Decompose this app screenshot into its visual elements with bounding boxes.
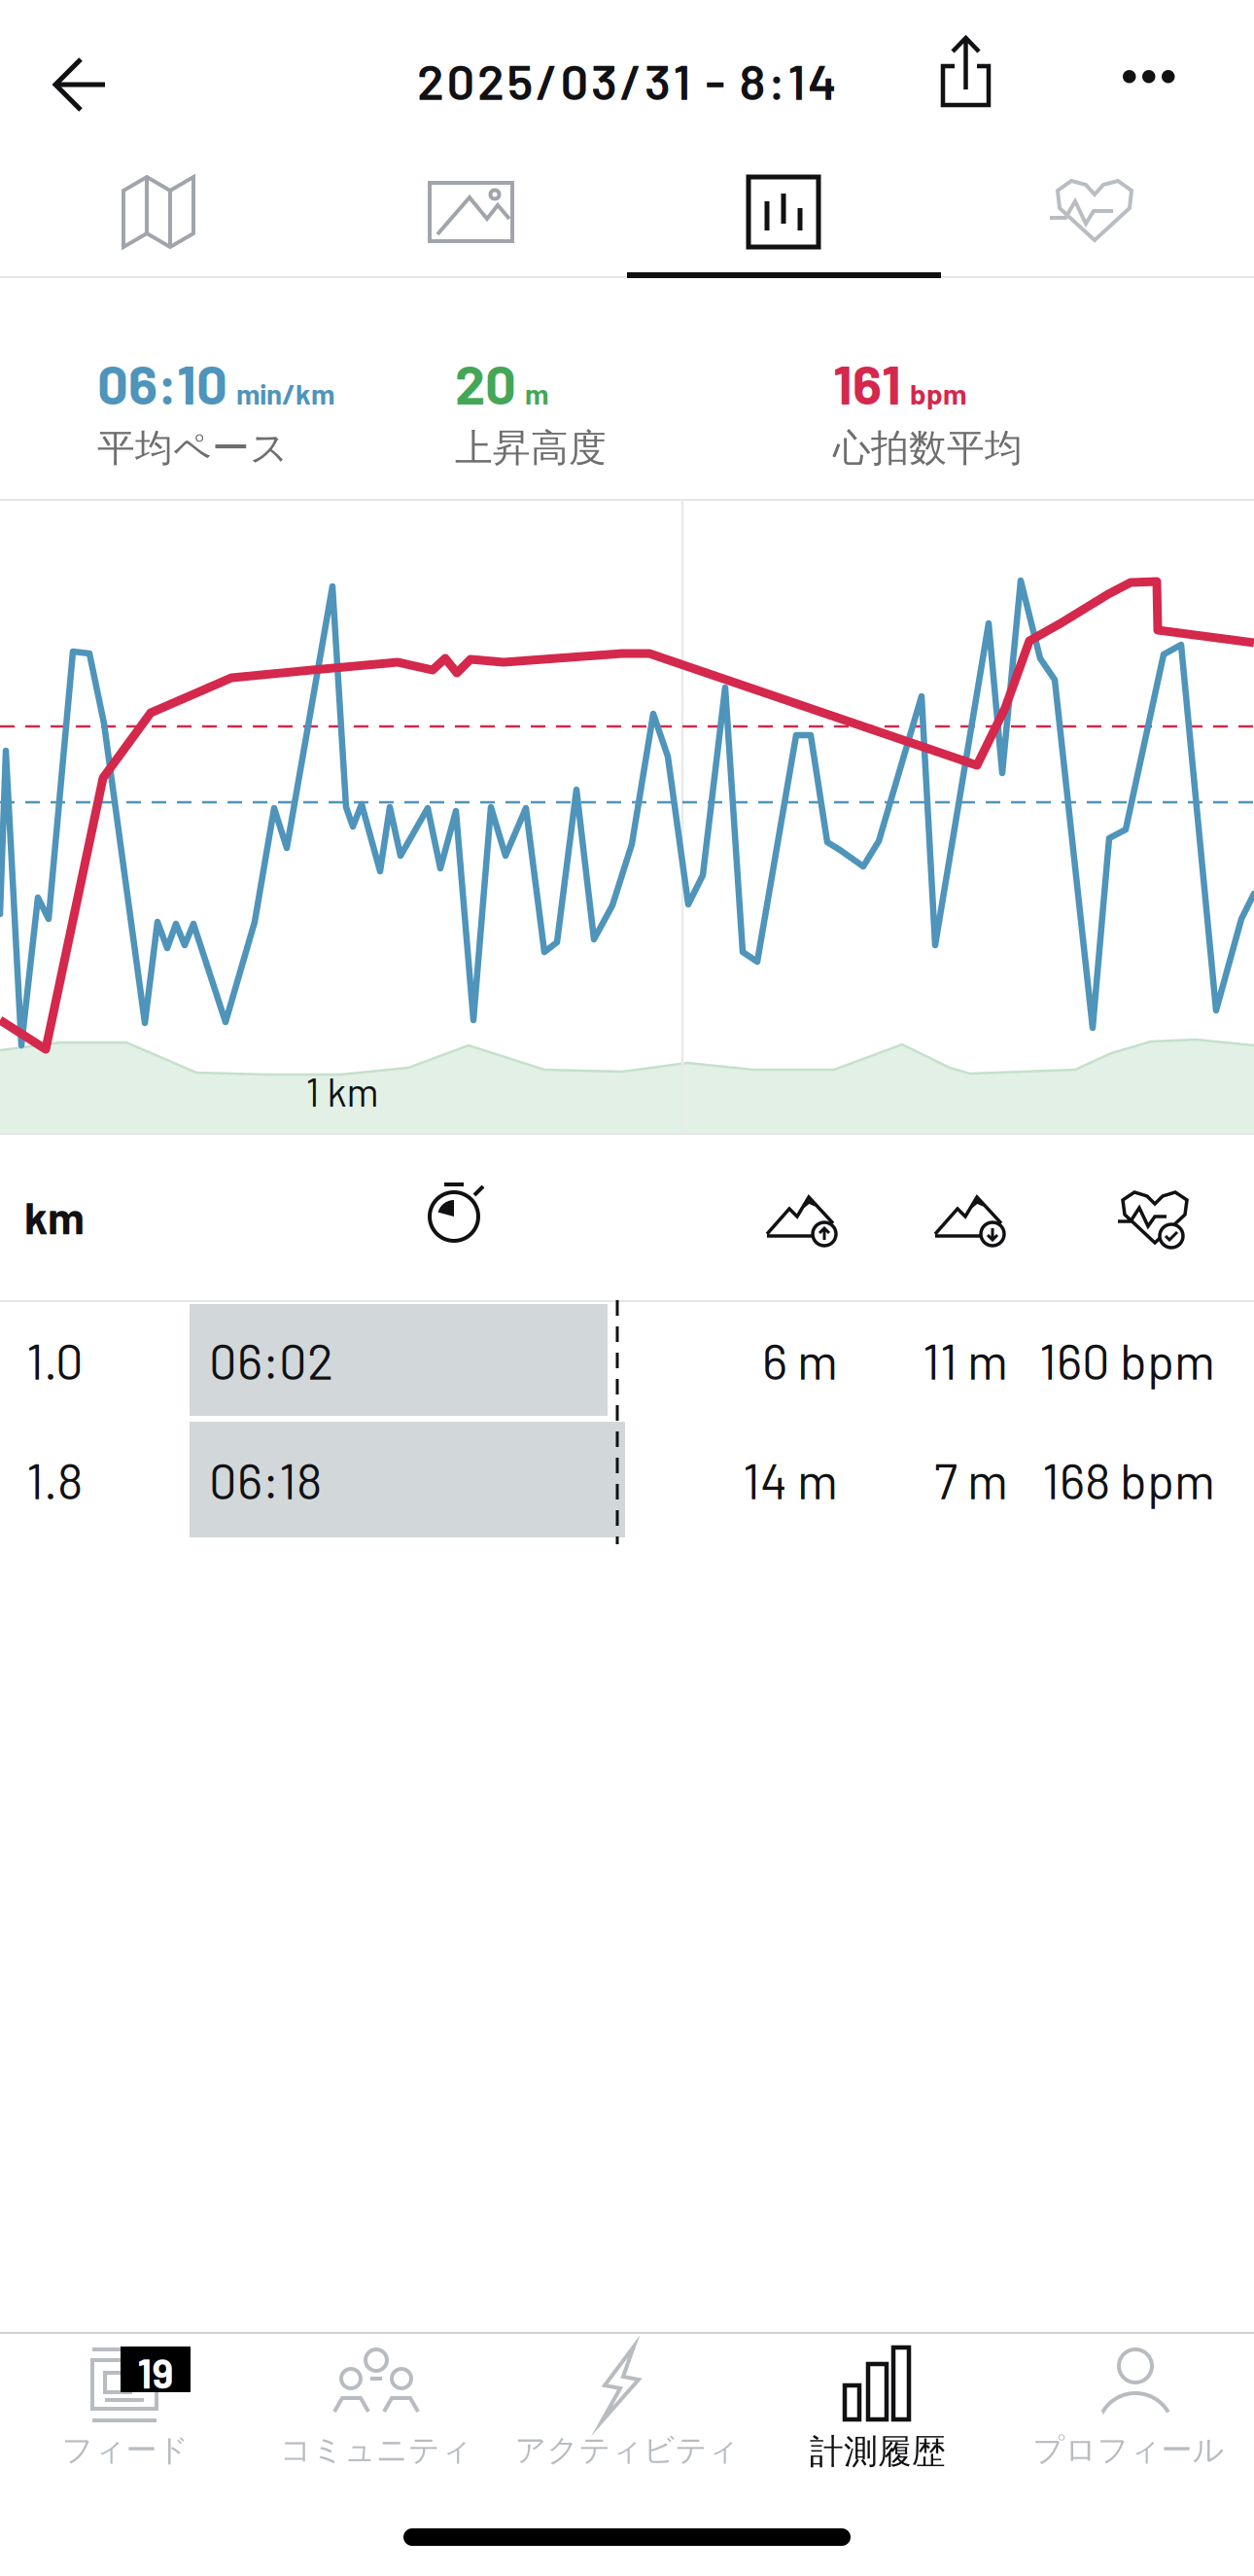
staticText: 7 m: [934, 1450, 1008, 1509]
staticText: 11 m: [923, 1330, 1008, 1389]
staticText: アクティビティ: [515, 2431, 739, 2469]
button[interactable]: [627, 156, 940, 272]
button[interactable]: [0, 0, 1254, 156]
button[interactable]: [940, 156, 1253, 272]
staticText: 1.8: [26, 1450, 83, 1509]
button[interactable]: [922, 19, 1009, 136]
staticText: 19: [138, 2348, 174, 2397]
staticText: 6 m: [762, 1330, 838, 1389]
staticText: 20: [455, 350, 516, 415]
button[interactable]: 19: [0, 0, 1254, 2576]
staticText: プロフィール: [1033, 2431, 1224, 2469]
button[interactable]: プロフィール: [0, 0, 1254, 2576]
button[interactable]: [0, 156, 313, 272]
button[interactable]: 計測履歴: [0, 0, 1254, 2576]
staticText: 心拍数平均: [833, 425, 1023, 471]
staticText: 168 bpm: [1042, 1450, 1215, 1509]
staticText: 上昇高度: [455, 425, 607, 471]
staticText: 計測履歴: [810, 2431, 946, 2473]
staticText: 06:18: [209, 1450, 322, 1509]
button[interactable]: コミュニティ: [0, 0, 1254, 2576]
staticText: 06:02: [209, 1330, 333, 1389]
staticText: フィード: [62, 2431, 189, 2469]
button[interactable]: アクティビティ: [0, 0, 1254, 2576]
staticText: min/km: [236, 376, 334, 410]
staticText: 平均ペース: [97, 425, 289, 471]
staticText: コミュニティ: [280, 2431, 472, 2469]
staticText: bpm: [910, 376, 966, 410]
staticText: 14 m: [743, 1450, 838, 1509]
button[interactable]: [313, 156, 626, 272]
button[interactable]: [0, 0, 1254, 156]
staticText: 2025/03/31 - 8:14: [417, 51, 837, 110]
staticText: 161: [833, 350, 901, 415]
staticText: 06:10: [97, 350, 227, 415]
staticText: 160 bpm: [1039, 1330, 1215, 1389]
staticText: m: [525, 376, 548, 410]
staticText: 1 km: [306, 1068, 379, 1114]
staticText: km: [24, 1190, 85, 1243]
staticText: 1.0: [26, 1330, 84, 1389]
